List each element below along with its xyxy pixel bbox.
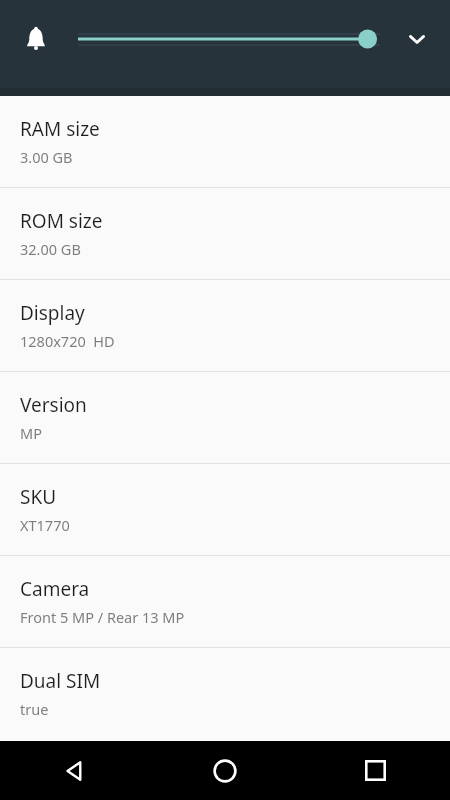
staticText: true [20,699,49,719]
button[interactable]: ROM size [0,188,450,279]
button[interactable]: Recent apps [300,741,450,800]
button[interactable]: Home [150,741,300,800]
button[interactable]: Notifications [16,19,56,59]
staticText: XT1770 [20,515,70,535]
button[interactable]: Display [0,280,450,371]
staticText: Front 5 MP / Rear 13 MP [20,607,185,627]
button[interactable]: Dual SIM [0,648,450,739]
button[interactable]: Collapse [397,19,437,59]
button[interactable] [70,19,388,59]
button[interactable]: Back [0,741,150,800]
staticText: Display [20,300,85,326]
staticText: Dual SIM [20,668,101,694]
staticText: SKU [20,484,57,510]
button[interactable]: Version [0,372,450,463]
staticText: MP [20,423,42,443]
staticText: 1280x720 HD [20,331,115,351]
staticText: 32.00 GB [20,239,81,259]
staticText: Camera [20,576,90,602]
staticText: 3.00 GB [20,147,73,167]
button[interactable]: SKU [0,464,450,555]
button[interactable]: RAM size [0,96,450,187]
staticText: ROM size [20,208,103,234]
staticText: Version [20,392,87,418]
staticText: RAM size [20,116,100,142]
button[interactable]: Camera [0,556,450,647]
